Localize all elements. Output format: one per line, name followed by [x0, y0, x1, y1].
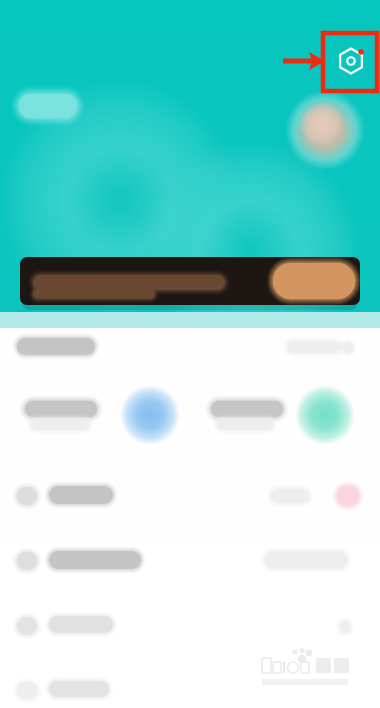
button[interactable]: Settings [332, 42, 370, 80]
